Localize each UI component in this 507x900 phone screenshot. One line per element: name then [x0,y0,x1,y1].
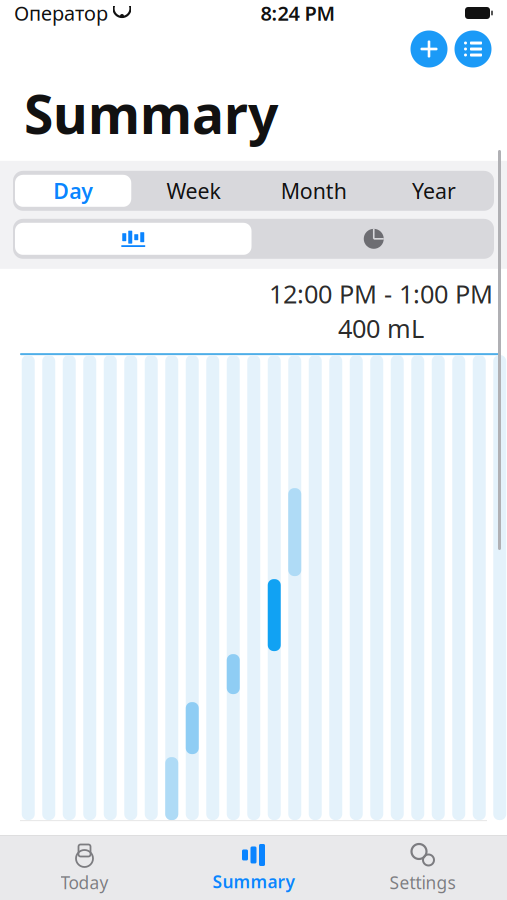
staticText: Summary [24,78,278,149]
staticText: Year [412,177,456,205]
staticText: Today [60,871,108,894]
button[interactable]: Add drink [407,27,451,71]
button[interactable]: Today [0,836,169,900]
button[interactable]: Day [13,173,133,209]
staticText: 400 mL [338,311,424,345]
staticText: Summary [212,870,294,893]
staticText: Week [166,177,220,205]
button[interactable]: Month [253,173,374,209]
staticText: Day [53,177,93,205]
button[interactable]: Settings [338,836,507,900]
button[interactable]: Summary [169,836,338,900]
button[interactable]: Year [374,173,494,209]
staticText: 12:00 PM - 1:00 PM [269,277,493,310]
staticText: Month [281,177,347,205]
button[interactable]: Week [133,173,253,209]
staticText: Оператор [14,0,108,26]
button[interactable]: Drink list [451,27,495,71]
button[interactable]: Pie chart [253,221,494,257]
staticText: 8:24 PM [260,0,335,26]
button[interactable]: Bar chart [13,221,253,257]
staticText: Settings [389,871,455,894]
